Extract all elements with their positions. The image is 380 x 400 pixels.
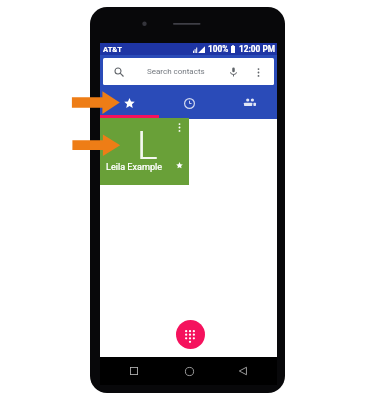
- staticText: L: [137, 123, 158, 169]
- staticText: 100%: [208, 44, 229, 54]
- button[interactable]: Recents: [159, 89, 218, 119]
- button[interactable]: Back: [229, 357, 257, 385]
- staticText: Search contacts: [147, 67, 205, 76]
- staticText: Leila Example: [106, 162, 163, 173]
- button[interactable]: Remove from favourites: [174, 160, 184, 170]
- button[interactable]: L: [100, 118, 189, 185]
- button[interactable]: More options: [251, 65, 265, 79]
- button[interactable]: Recent apps: [120, 357, 148, 385]
- button[interactable]: Search contacts: [103, 58, 274, 85]
- staticText: AT&T: [103, 45, 123, 54]
- button[interactable]: Favorites: [100, 89, 159, 119]
- button[interactable]: Dialpad: [176, 320, 205, 349]
- button[interactable]: Home: [175, 357, 203, 385]
- button[interactable]: Contacts: [218, 89, 277, 119]
- button[interactable]: Contact options: [174, 122, 184, 132]
- staticText: 12:00 PM: [239, 44, 276, 54]
- button[interactable]: Voice search: [226, 65, 240, 79]
